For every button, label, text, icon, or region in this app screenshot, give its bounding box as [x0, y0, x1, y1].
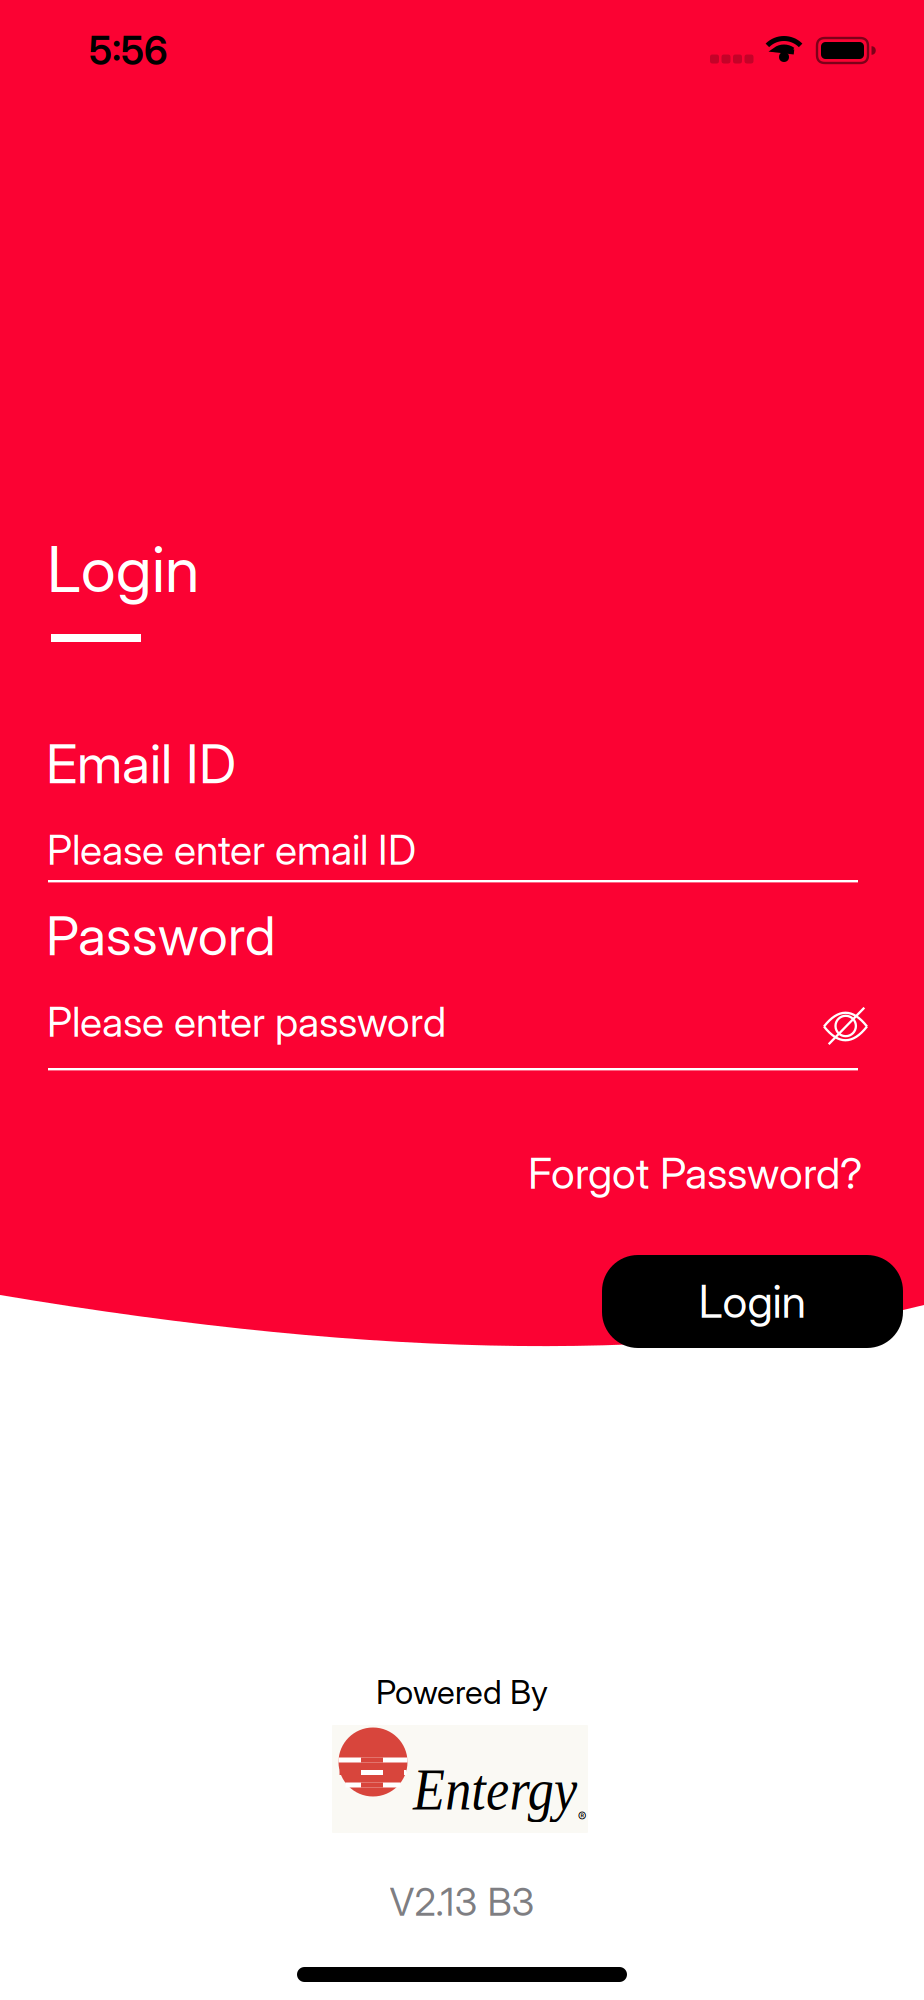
button[interactable]: Please enter email ID — [47, 825, 858, 882]
staticText: Email ID — [46, 731, 236, 796]
staticText: Please enter email ID — [47, 825, 416, 875]
button[interactable]: Login — [602, 1255, 903, 1348]
staticText: ® — [578, 1809, 586, 1825]
button[interactable]: Please enter password — [47, 997, 858, 1070]
staticText: Please enter password — [47, 997, 446, 1047]
staticText: Login — [698, 1274, 806, 1329]
staticText: Entergy — [413, 1756, 602, 1822]
staticText: Powered By — [376, 1672, 548, 1712]
staticText: V2.13 B3 — [389, 1879, 534, 1925]
staticText: Forgot Password? — [528, 1147, 863, 1199]
button[interactable]: Forgot Password? — [528, 1147, 863, 1199]
staticText: Login — [47, 531, 199, 607]
button[interactable]: Show password — [818, 998, 874, 1054]
staticText: Password — [46, 903, 276, 968]
staticText: 5:56 — [89, 27, 168, 74]
